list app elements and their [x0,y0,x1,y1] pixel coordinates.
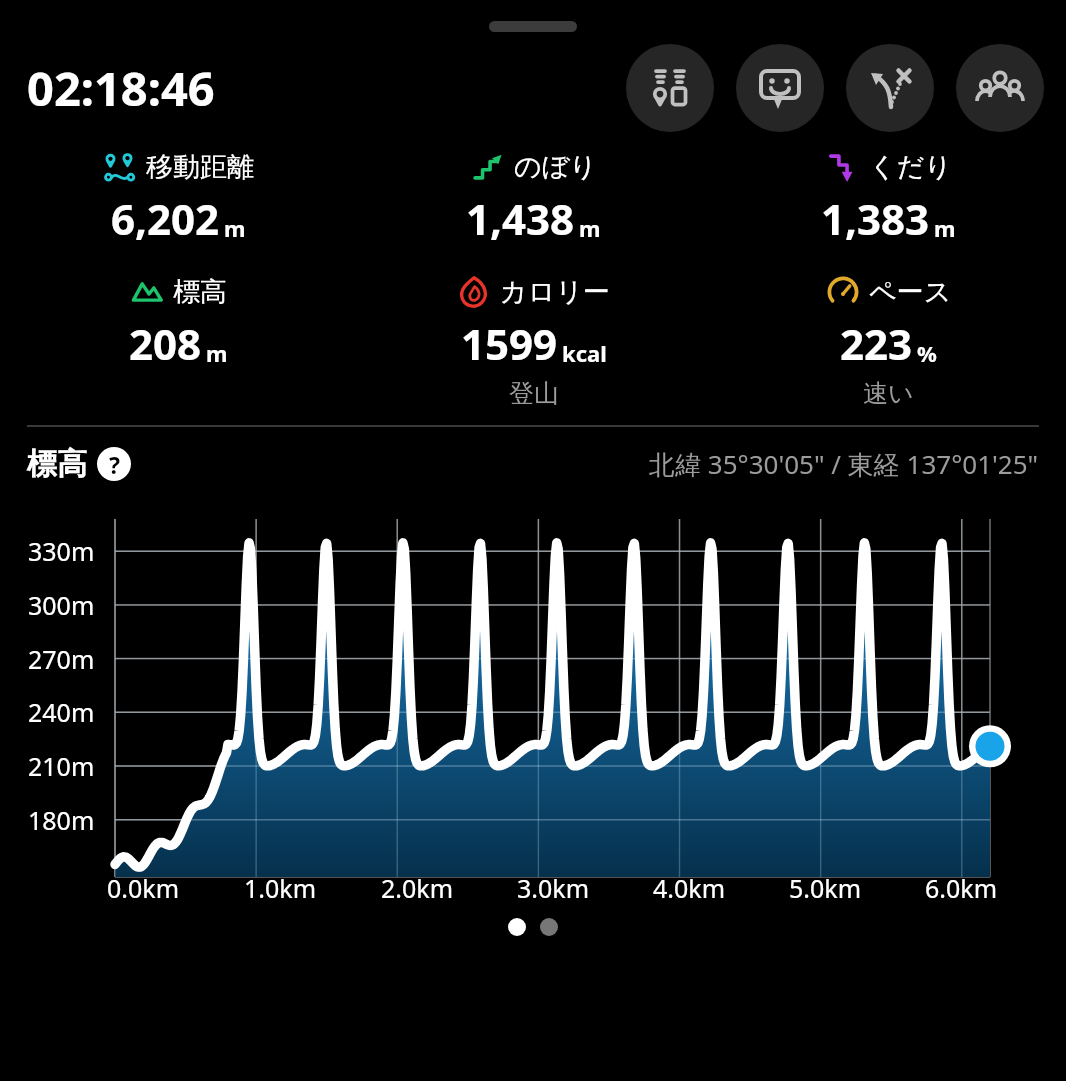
staticText: 300m [28,588,95,622]
staticText: m [934,213,956,243]
staticText: 2.0km [381,871,454,905]
staticText: 180m [28,803,95,837]
staticText: ペース [869,275,952,309]
button[interactable]: 移動距離 [0,150,356,247]
staticText: 1,438 [466,190,575,247]
button[interactable]: Photo note [736,44,824,132]
staticText: 5.0km [789,871,862,905]
button[interactable]: Help [97,447,131,481]
staticText: % [917,338,937,368]
button[interactable]: ペース [711,275,1066,409]
staticText: m [206,338,228,368]
staticText: のぼり [514,150,597,184]
staticText: 6.0km [925,871,998,905]
button[interactable] [540,918,558,936]
button[interactable]: Members [956,44,1044,132]
staticText: 1599 [461,315,558,372]
staticText: kcal [562,338,607,368]
staticText: 210m [28,749,95,783]
staticText: 270m [28,642,95,676]
button[interactable]: Route points [626,44,714,132]
staticText: 標高 [173,275,227,309]
staticText: 1.0km [244,871,317,905]
staticText: 3.0km [517,871,590,905]
staticText: 1,383 [821,190,930,247]
button[interactable]: 標高 [0,275,356,372]
button[interactable] [508,918,526,936]
button[interactable]: 330m [0,501,1066,905]
staticText: m [579,213,601,243]
staticText: 223 [840,315,913,372]
staticText: 0.0km [107,871,180,905]
staticText: 移動距離 [146,150,254,184]
button[interactable]: くだり [711,150,1066,247]
staticText: 速い [863,378,914,409]
staticText: 北緯 35°30'05" / 東経 137°01'25" [649,446,1039,482]
staticText: 6,202 [111,190,220,247]
staticText: 標高 [27,445,87,483]
button[interactable]: のぼり [356,150,711,247]
button[interactable]: Off route alert [846,44,934,132]
staticText: 4.0km [653,871,726,905]
staticText: ? [109,449,120,480]
staticText: くだり [869,150,952,184]
staticText: 登山 [509,378,559,409]
staticText: 330m [28,534,95,568]
staticText: 240m [28,695,95,729]
button[interactable]: カロリー [356,275,711,409]
staticText: 208 [129,315,202,372]
staticText: 02:18:46 [27,56,215,120]
staticText: m [224,213,246,243]
staticText: カロリー [500,275,610,309]
